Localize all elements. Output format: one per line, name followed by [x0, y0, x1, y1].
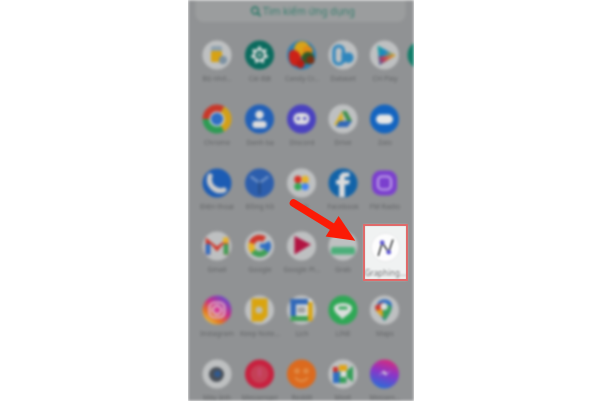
staticText: Chrome — [196, 138, 238, 148]
staticText: Discord — [281, 138, 323, 148]
staticText: Grab — [322, 265, 364, 275]
staticText: CH Play — [364, 74, 406, 84]
staticText: Dataset — [322, 74, 364, 84]
staticText: Gmail — [196, 265, 238, 275]
staticText: Meet — [322, 393, 364, 401]
staticText: Facebook — [322, 202, 364, 212]
staticText: Lịch — [281, 329, 323, 339]
staticText: Graphing... — [364, 267, 407, 278]
staticText: Google Pl... — [281, 265, 323, 275]
staticText: LINE — [322, 329, 364, 339]
staticText: FM Radio — [364, 202, 406, 212]
staticText: Điện thoại — [196, 202, 238, 212]
staticText: Zalo — [364, 138, 406, 148]
staticText: Ảnh — [281, 202, 323, 212]
staticText: Bộ nhớ... — [196, 74, 238, 84]
staticText: Messen... — [364, 393, 406, 401]
staticText: Máy ảnh — [196, 393, 238, 401]
staticText: Candy Cr... — [281, 74, 323, 84]
staticText: Reddit — [281, 393, 323, 401]
staticText: Tìm kiếm ứng dụng — [263, 4, 355, 18]
staticText: Đồng hồ — [239, 202, 281, 212]
staticText: Google — [239, 265, 281, 275]
staticText: Cài đặt — [239, 74, 281, 84]
staticText: Maps — [364, 329, 406, 339]
staticText: Keep Note... — [239, 329, 281, 339]
staticText: Instagram — [196, 329, 238, 339]
staticText: Danh bạ — [239, 138, 281, 148]
button[interactable]: Graphing Calculator app — [364, 225, 407, 280]
staticText: Messenger — [239, 393, 281, 401]
staticText: Drive — [322, 138, 364, 148]
